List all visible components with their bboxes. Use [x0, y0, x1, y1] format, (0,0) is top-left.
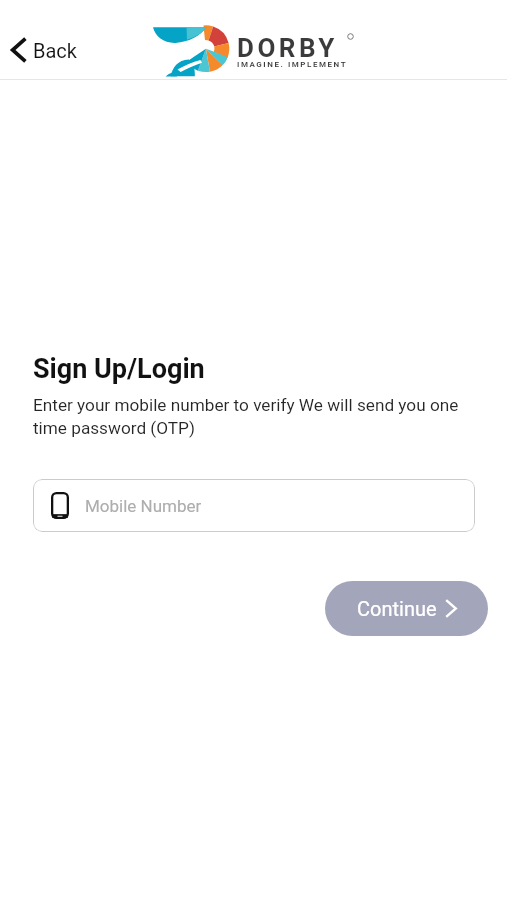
- staticText: DORBY: [237, 33, 338, 63]
- other: Back: [11, 37, 27, 63]
- staticText: Continue: [357, 597, 437, 620]
- staticText: Mobile Number: [85, 496, 202, 516]
- button[interactable]: Back: [5, 30, 83, 70]
- staticText: IMAGINE. IMPLEMENT: [237, 60, 348, 69]
- staticText: Back: [33, 39, 77, 62]
- staticText: Enter your mobile number to verify We wi…: [33, 395, 465, 438]
- staticText: Sign Up/Login: [33, 353, 205, 385]
- button[interactable]: Mobile Number: [33, 479, 475, 532]
- button[interactable]: Continue: [325, 581, 488, 636]
